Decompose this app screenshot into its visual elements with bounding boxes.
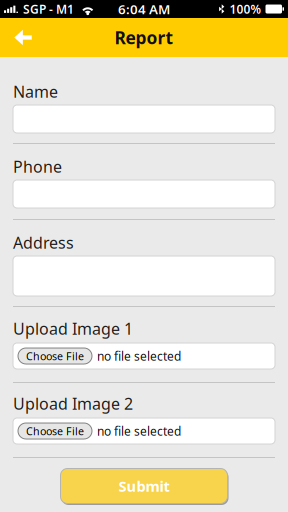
staticText: Upload Image 2 <box>13 393 133 414</box>
staticText: 100% <box>229 1 261 17</box>
staticText: Name <box>13 81 58 102</box>
button[interactable]: Choose File <box>18 348 92 364</box>
button[interactable]: Back <box>7 18 39 57</box>
staticText: Phone <box>13 156 62 177</box>
button[interactable]: Submit <box>59 467 228 505</box>
staticText: Choose File <box>26 349 84 363</box>
staticText: no file selected <box>97 423 181 439</box>
staticText: Report <box>114 26 173 49</box>
staticText: Choose File <box>26 424 84 438</box>
staticText: no file selected <box>97 348 181 364</box>
staticText: Upload Image 1 <box>13 318 133 339</box>
staticText: Address <box>13 232 74 253</box>
staticText: SGP - M1 <box>23 1 74 17</box>
button[interactable]: Choose File <box>18 423 92 439</box>
staticText: 6:04 AM <box>118 0 170 18</box>
staticText: Submit <box>118 476 169 496</box>
